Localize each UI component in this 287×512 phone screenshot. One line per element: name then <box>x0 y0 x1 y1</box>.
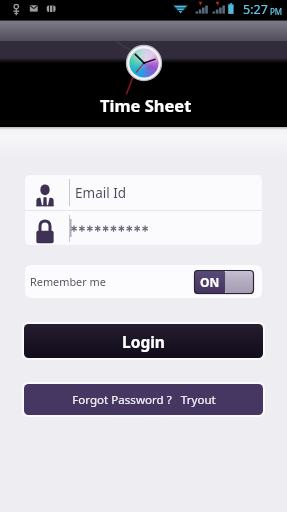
staticText: Remember me <box>30 274 106 289</box>
staticText: 5:27 <box>243 1 268 18</box>
button[interactable] <box>25 211 262 245</box>
staticText: Login <box>122 331 165 352</box>
button[interactable]: Email Id <box>25 175 262 210</box>
button[interactable]: Login <box>24 324 263 358</box>
button[interactable]: Remember me <box>25 265 262 298</box>
staticText: PM <box>270 6 283 17</box>
staticText: ON <box>200 274 220 290</box>
staticText: Time Sheet <box>100 94 192 116</box>
staticText: Forgot Password ? Tryout <box>72 392 216 408</box>
staticText: Email Id <box>75 184 127 202</box>
button[interactable]: Forgot Password ? Tryout <box>24 384 263 415</box>
button[interactable]: ON <box>194 270 254 294</box>
